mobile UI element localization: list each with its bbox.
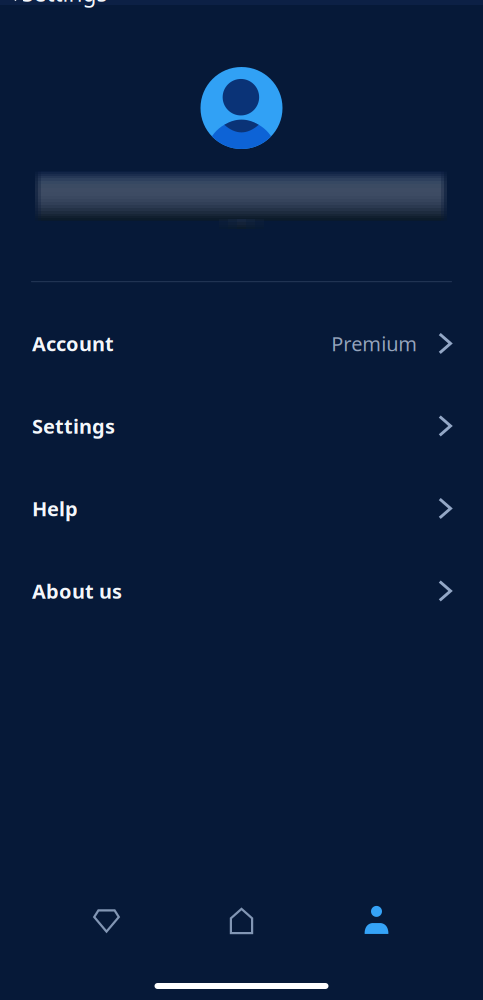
button[interactable]: Settings bbox=[0, 0, 483, 14]
staticText: Help bbox=[32, 495, 78, 522]
staticText: About us bbox=[32, 578, 122, 604]
staticText: Account bbox=[32, 330, 114, 357]
button[interactable]: Home bbox=[207, 896, 276, 946]
staticText: Premium bbox=[331, 330, 417, 357]
button[interactable]: Profile bbox=[342, 896, 411, 946]
button[interactable]: Settings bbox=[0, 385, 483, 467]
button[interactable]: Help bbox=[0, 467, 483, 550]
staticText: Settings bbox=[21, 0, 107, 8]
staticText: Settings bbox=[32, 413, 115, 439]
button[interactable]: Account bbox=[0, 302, 483, 385]
button[interactable]: Rewards bbox=[72, 896, 141, 946]
button[interactable]: About us bbox=[0, 550, 483, 632]
